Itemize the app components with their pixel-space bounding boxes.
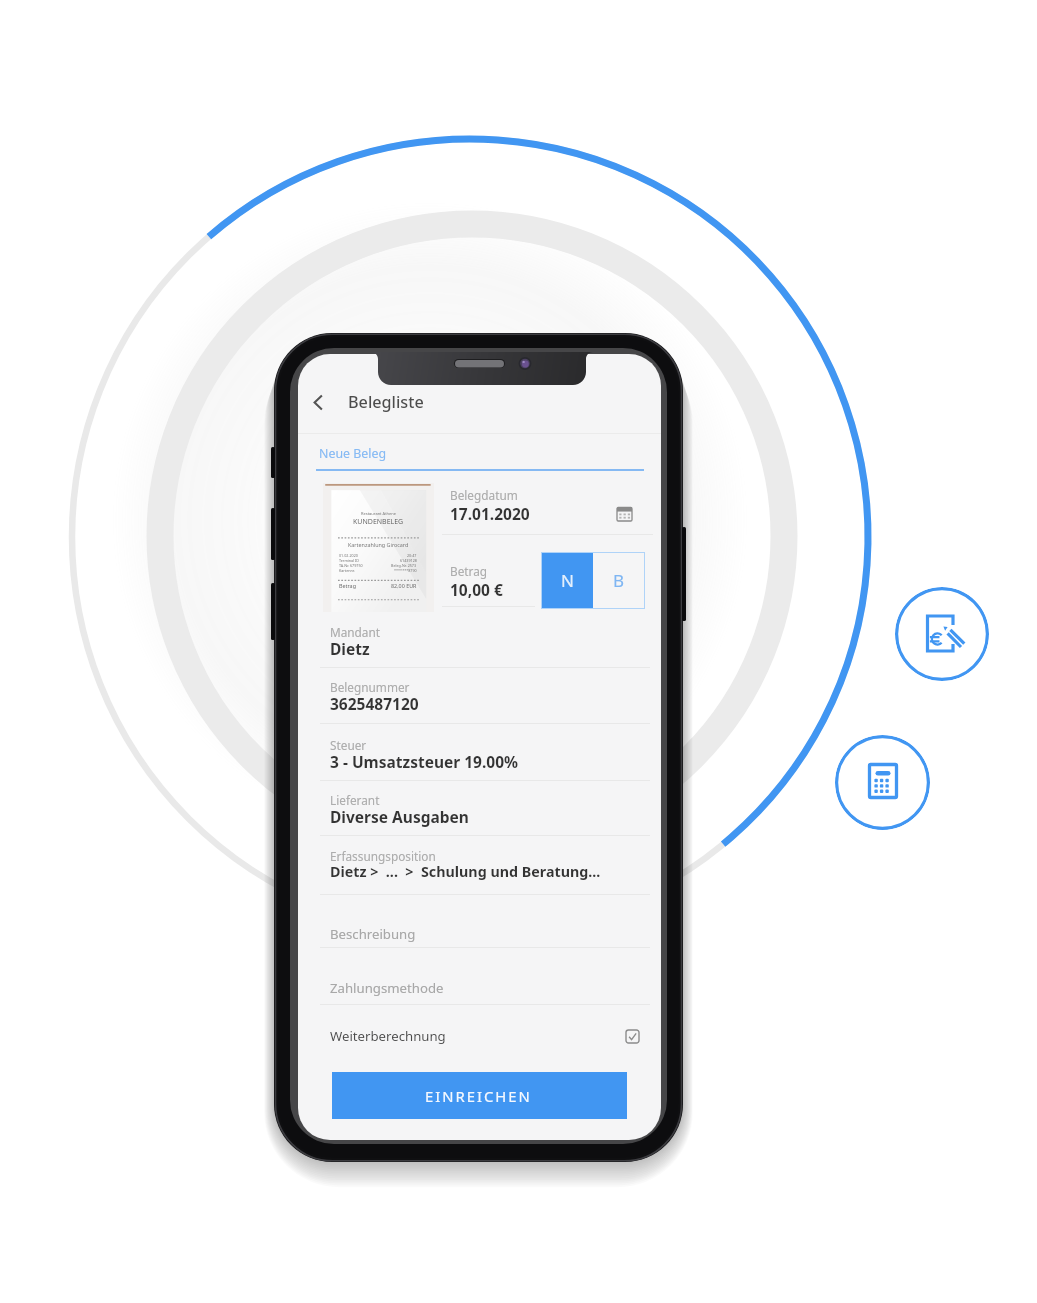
- staticText: 20:47: [407, 553, 417, 558]
- staticText: 61439128: [400, 558, 417, 563]
- staticText: Steuer: [330, 737, 367, 753]
- button[interactable]: Belegnummer: [298, 673, 661, 723]
- staticText: Betrag: [339, 582, 356, 589]
- staticText: KUNDENBELEG: [353, 517, 404, 527]
- button[interactable]: B: [593, 552, 645, 609]
- staticText: B: [613, 569, 625, 592]
- staticText: 01.02.2020: [339, 553, 358, 558]
- button[interactable]: Lieferant: [298, 786, 661, 836]
- staticText: Dietz: [330, 638, 370, 659]
- staticText: Belegnummer: [330, 679, 410, 695]
- button[interactable]: Belegdatum: [450, 487, 653, 533]
- staticText: Diverse Ausgaben: [330, 806, 469, 827]
- staticText: 17.01.2020: [450, 503, 530, 524]
- button[interactable]: Erfassungsposition: [298, 842, 661, 892]
- staticText: Belegliste: [348, 391, 424, 413]
- staticText: Restaurant Athene: [361, 511, 397, 516]
- button[interactable]: Zahlungsmethode: [330, 979, 444, 997]
- button[interactable]: Rechner: [835, 735, 930, 830]
- staticText: 10,00 €: [450, 579, 503, 600]
- button[interactable]: Beschreibung: [330, 925, 416, 943]
- button[interactable]: EINREICHEN: [332, 1072, 627, 1119]
- staticText: Lieferant: [330, 792, 380, 808]
- staticText: *******8790: [394, 568, 417, 573]
- button[interactable]: Beleg erfassen: [895, 587, 989, 681]
- staticText: Betrag: [450, 563, 488, 579]
- staticText: Kartenzahlung Girocard: [348, 541, 409, 548]
- staticText: EINREICHEN: [425, 1086, 532, 1106]
- button[interactable]: Steuer: [298, 731, 661, 781]
- staticText: Beleg-Nr. 2573: [391, 563, 417, 568]
- staticText: Neue Beleg: [319, 445, 387, 462]
- staticText: 82,00 EUR: [391, 582, 417, 589]
- staticText: Mandant: [330, 624, 381, 640]
- button[interactable]: Belegfoto: [323, 483, 434, 612]
- button[interactable]: Neue Beleg: [298, 436, 661, 470]
- staticText: N: [561, 569, 574, 592]
- staticText: 3625487120: [330, 693, 419, 714]
- staticText: Kartennr.: [339, 568, 355, 573]
- button[interactable]: Betrag: [450, 563, 534, 609]
- staticText: Weiterberechnung: [330, 1027, 446, 1045]
- staticText: Terminal ID: [339, 558, 359, 563]
- staticText: Dietz > ... > Schulung und Beratung...: [330, 862, 601, 881]
- button[interactable]: Weiterberechnung: [298, 1016, 661, 1056]
- button[interactable]: Zurück: [303, 387, 333, 417]
- staticText: Erfassungsposition: [330, 848, 436, 864]
- staticText: 3 - Umsatzsteuer 19.00%: [330, 751, 519, 772]
- staticText: Belegdatum: [450, 487, 518, 503]
- button[interactable]: Mandant: [298, 618, 661, 668]
- button[interactable]: N: [541, 552, 593, 609]
- staticText: TA-Nr. 679750: [339, 563, 363, 568]
